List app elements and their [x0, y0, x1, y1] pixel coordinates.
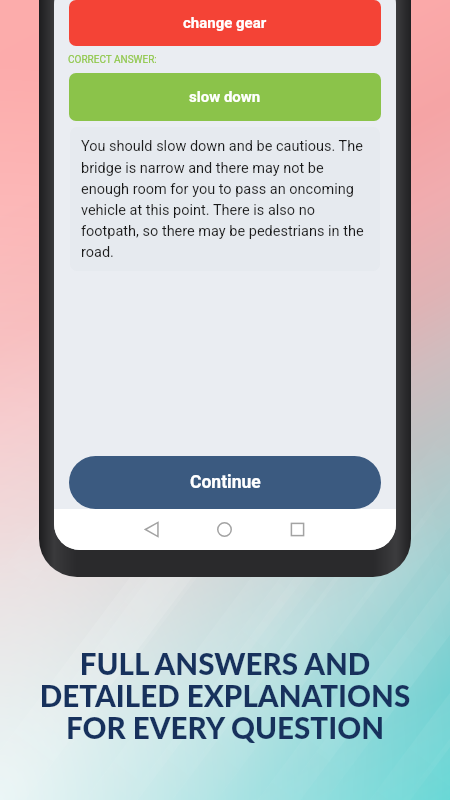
- staticText: CORRECT ANSWER:: [68, 54, 157, 66]
- staticText: slow down: [189, 88, 261, 106]
- button[interactable]: Recents: [279, 511, 315, 547]
- button[interactable]: Back: [133, 511, 169, 547]
- button[interactable]: Continue: [69, 456, 381, 509]
- button[interactable]: Home: [206, 511, 242, 547]
- staticText: Continue: [190, 472, 261, 493]
- staticText: FULL ANSWERS AND DETAILED EXPLANATIONS F…: [0, 646, 450, 746]
- staticText: You should slow down and be cautious. Th…: [81, 138, 369, 260]
- button[interactable]: slow down: [69, 73, 381, 121]
- button[interactable]: change gear: [69, 0, 381, 46]
- staticText: change gear: [183, 14, 267, 32]
